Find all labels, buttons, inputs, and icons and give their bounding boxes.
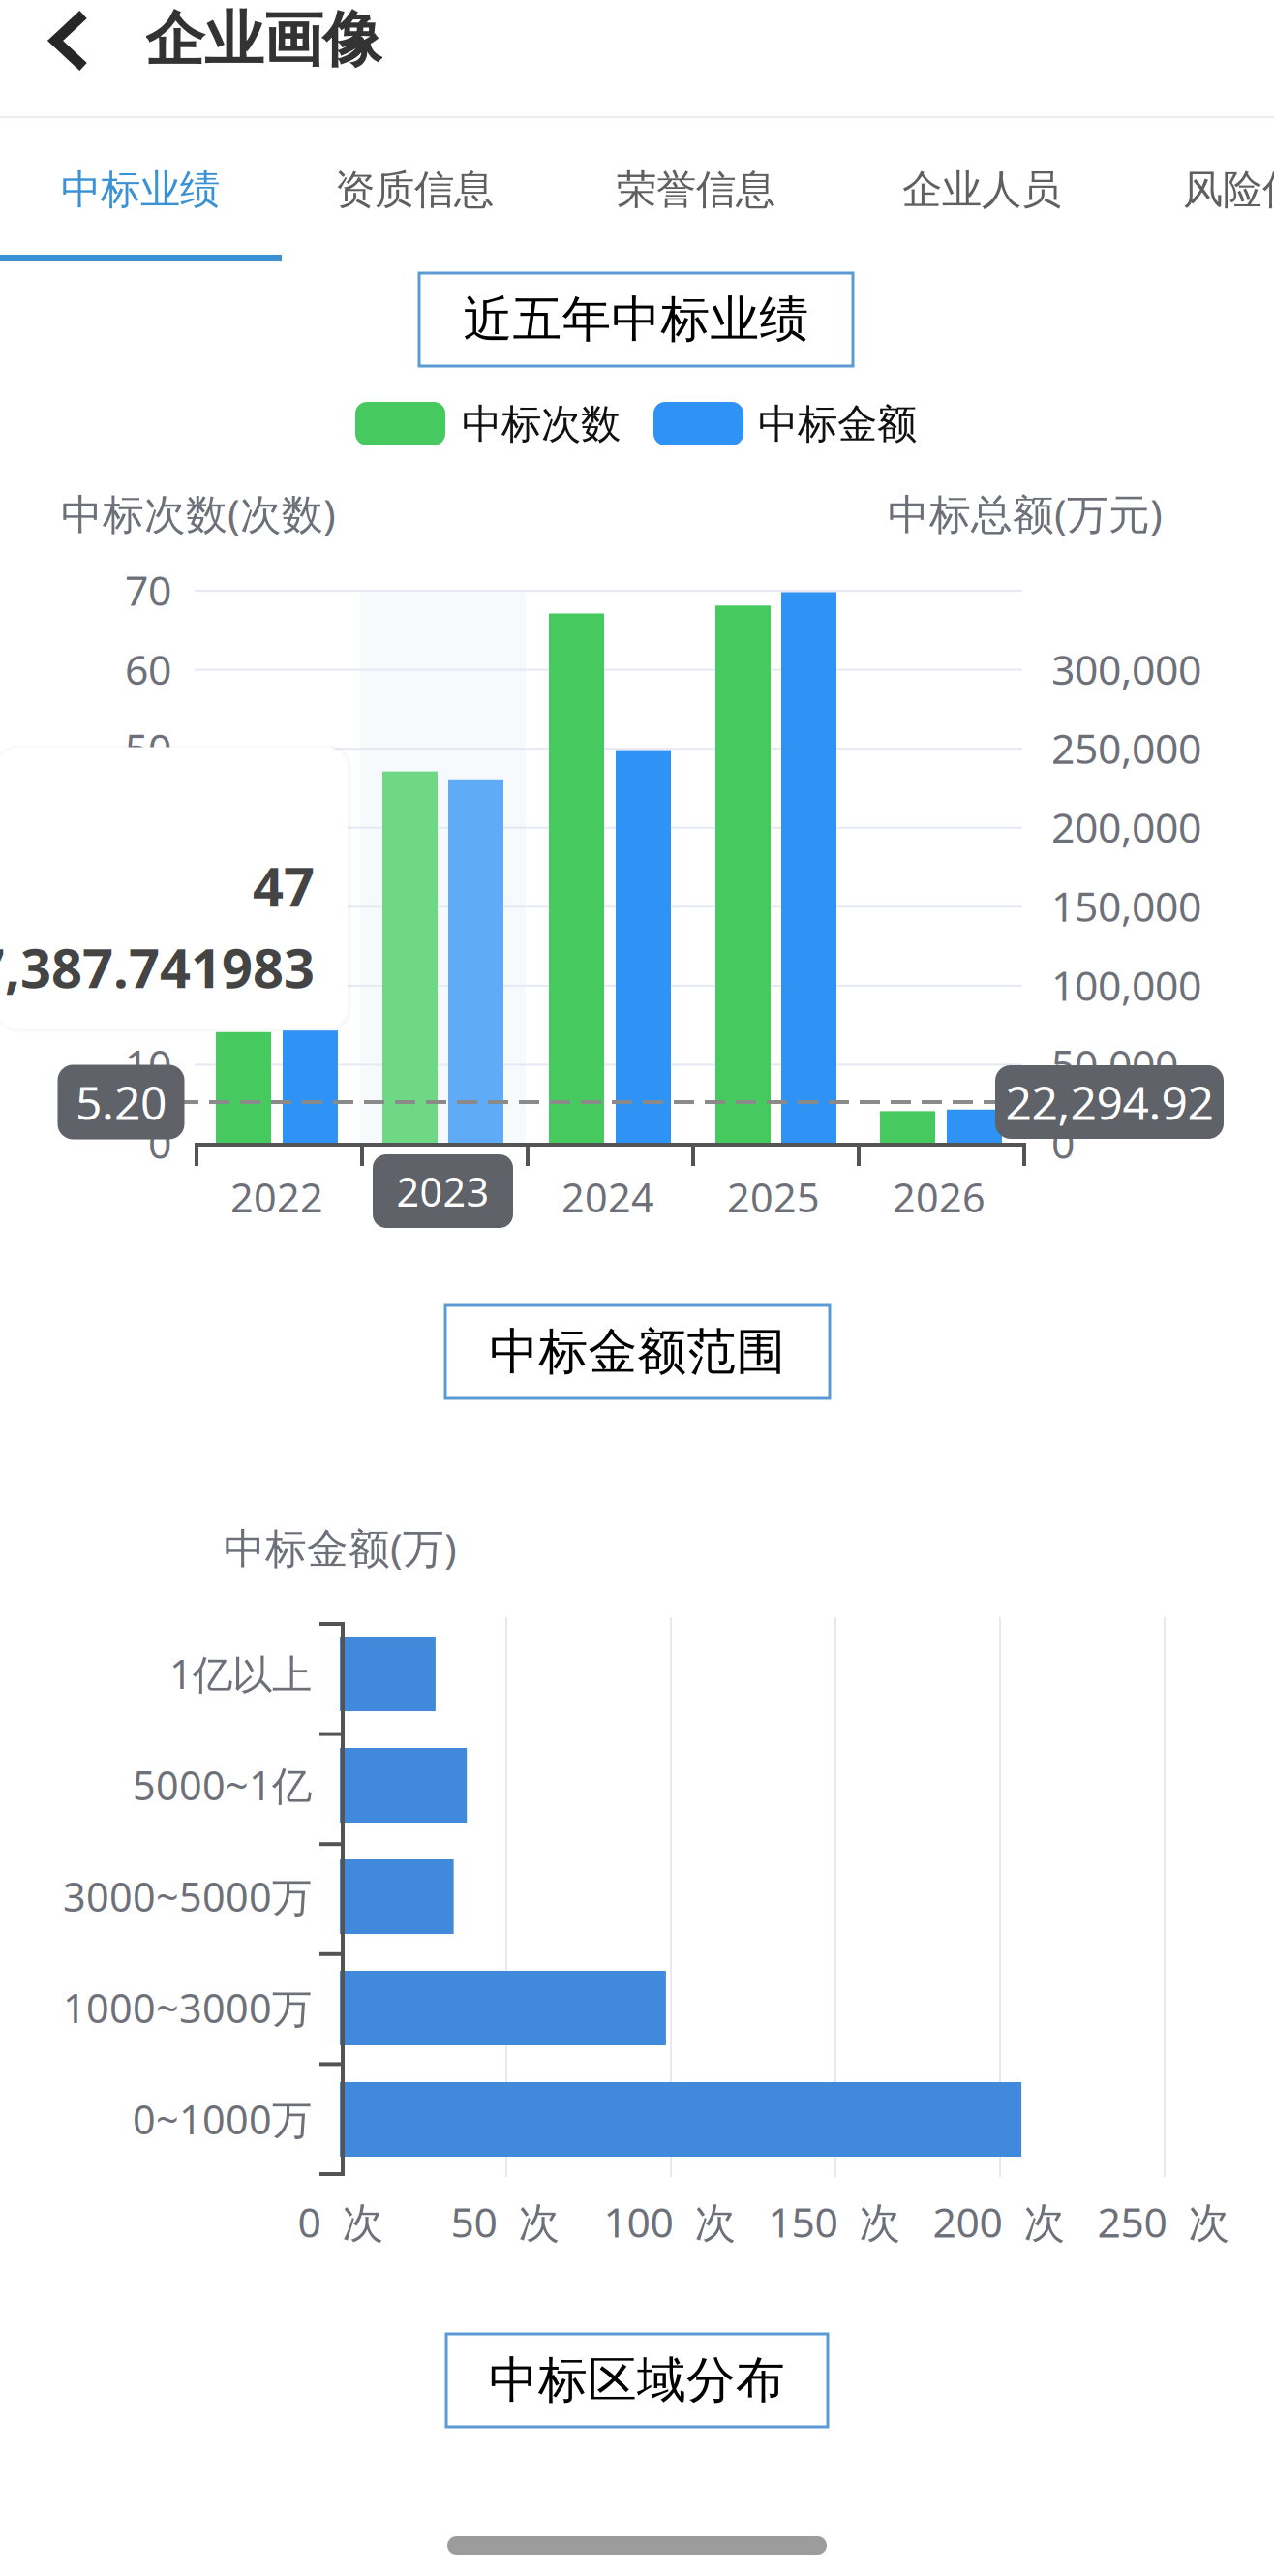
staticText: 2026 [893,1170,986,1224]
staticText: 250 次 [1097,2194,1230,2249]
staticText: 中标次数(次数) [61,486,336,541]
staticText: 中标总额(万元) [888,486,1163,541]
staticText: 0 次 [298,2194,384,2249]
staticText: 企业画像 [145,3,381,76]
staticText: 2023 [396,1165,489,1218]
staticText: 47 [253,850,315,922]
staticText: 中标金额(万) [224,1520,457,1575]
staticText: 200,000 [1051,799,1201,854]
staticText: 50,000 [1051,1036,1178,1091]
staticText: 250,000 [1051,720,1201,775]
staticText: 100 次 [604,2194,736,2249]
staticText: 7,387.741983 [0,931,315,1003]
button[interactable]: 返回 [0,0,128,114]
staticText: 200 次 [933,2194,1065,2249]
staticText: 300,000 [1051,641,1201,696]
staticText: 20 [125,957,171,1012]
staticText: 22,294.92 [1005,1071,1213,1133]
staticText: 2025 [727,1170,820,1224]
staticText: 1000~3000万 [63,1981,312,2034]
staticText: 1亿以上 [169,1647,312,1700]
staticText: 2024 [561,1170,654,1224]
staticText: 0 [1051,1115,1075,1170]
staticText: 企业人员 [902,165,1061,214]
button[interactable]: 荣誉信息 [617,132,791,248]
staticText: 150 次 [768,2194,901,2249]
staticText: 5000~1亿 [133,1758,312,1811]
staticText: 中标金额范围 [489,1322,786,1382]
staticText: 50 次 [451,2194,560,2249]
staticText: 10 [125,1036,171,1091]
staticText: 中标次数 [462,400,621,449]
staticText: 资质信息 [335,165,494,214]
staticText: 中标金额 [758,400,917,449]
staticText: 3000~5000万 [63,1870,312,1923]
button[interactable]: 风险信息 [1183,132,1274,248]
staticText: 近五年中标业绩 [463,289,809,350]
staticText: 荣誉信息 [617,165,775,214]
staticText: 中标业绩 [61,165,220,214]
staticText: 风险信息 [1183,165,1274,214]
staticText: 100,000 [1051,957,1201,1012]
staticText: 60 [125,641,171,696]
staticText: 0 [148,1115,171,1170]
staticText: 70 [125,562,171,617]
staticText: 0~1000万 [133,2092,312,2146]
staticText: 50 [125,720,171,775]
staticText: 150,000 [1051,878,1201,933]
button[interactable]: 中标业绩 [61,132,235,248]
staticText: 2022 [230,1170,323,1224]
staticText: 5.20 [76,1071,167,1133]
button[interactable]: 资质信息 [335,132,509,248]
button[interactable]: 企业人员 [902,132,1077,248]
staticText: 中标区域分布 [489,2350,785,2410]
